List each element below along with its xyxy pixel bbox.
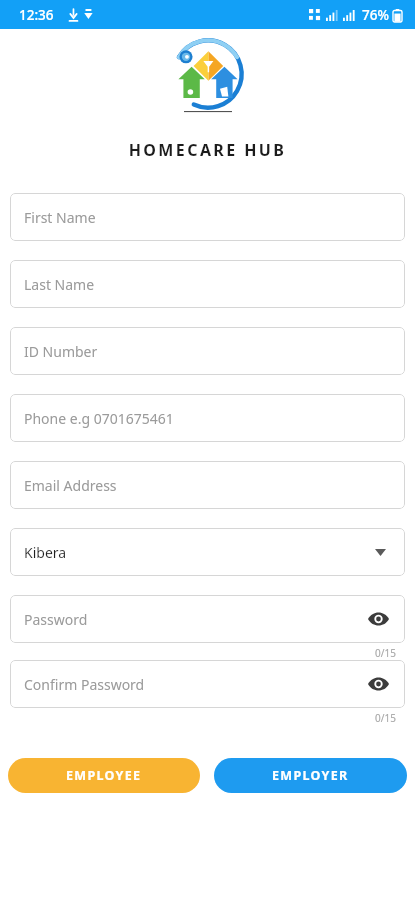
staticText: Last Name xyxy=(24,275,95,294)
staticText: Phone e.g 0701675461 xyxy=(24,409,174,428)
staticText: 0/15 xyxy=(0,711,396,725)
button[interactable]: ID Number xyxy=(10,327,405,375)
staticText: EMPLOYEE xyxy=(66,767,142,784)
staticText: 76% xyxy=(362,6,389,24)
button[interactable]: Kibera xyxy=(10,528,405,576)
staticText: 0/15 xyxy=(0,646,396,660)
button[interactable]: Last Name xyxy=(10,260,405,308)
button[interactable]: First Name xyxy=(10,193,405,241)
staticText: HOMECARE HUB xyxy=(0,139,415,161)
button[interactable]: Phone e.g 0701675461 xyxy=(10,394,405,442)
button[interactable]: EMPLOYEE xyxy=(8,758,200,793)
button[interactable]: Confirm Password xyxy=(10,660,405,708)
button[interactable]: Email Address xyxy=(10,461,405,509)
staticText: Email Address xyxy=(24,476,117,495)
staticText: Kibera xyxy=(24,543,67,562)
button[interactable]: Open location dropdown xyxy=(369,541,391,563)
staticText: Password xyxy=(24,610,88,629)
staticText: ID Number xyxy=(24,342,98,361)
staticText: Confirm Password xyxy=(24,675,145,694)
button[interactable]: EMPLOYER xyxy=(214,758,407,793)
button[interactable]: Toggle password visibility xyxy=(363,604,393,634)
staticText: EMPLOYER xyxy=(272,767,349,784)
button[interactable]: Toggle password visibility xyxy=(363,669,393,699)
button[interactable]: Password xyxy=(10,595,405,643)
staticText: First Name xyxy=(24,208,96,227)
staticText: 12:36 xyxy=(19,6,54,24)
